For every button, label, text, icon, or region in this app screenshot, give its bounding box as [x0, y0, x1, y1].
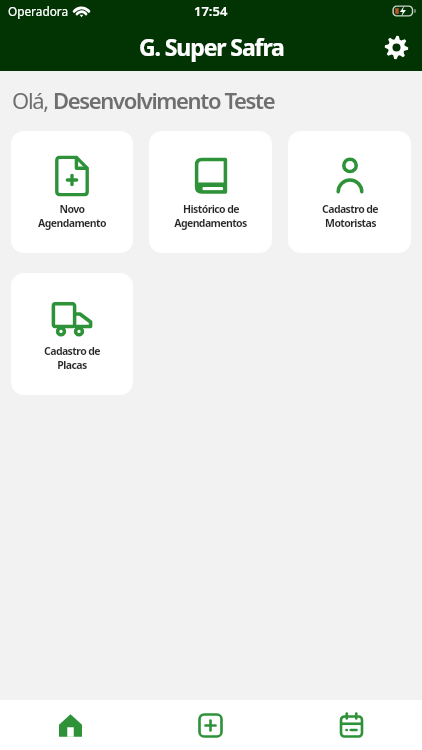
staticText: Operadora	[8, 3, 69, 19]
staticText: Cadastro de	[44, 344, 100, 358]
staticText: Agendamentos	[174, 216, 247, 230]
button[interactable]: Settings	[379, 30, 413, 64]
staticText: Desenvolvimento Teste	[53, 85, 275, 115]
button[interactable]: Cadastro de	[11, 273, 133, 395]
staticText: G. Super Safra	[139, 31, 284, 62]
staticText: Histórico de	[183, 202, 239, 216]
button[interactable]: New appointment	[140, 700, 281, 750]
button[interactable]: Histórico de	[149, 131, 272, 253]
staticText: Olá,	[12, 85, 53, 115]
button[interactable]: Novo	[11, 131, 133, 253]
staticText: Motoristas	[325, 216, 376, 230]
button[interactable]: Schedule	[281, 700, 422, 750]
staticText: Placas	[57, 358, 87, 372]
button[interactable]: Cadastro de	[288, 131, 411, 253]
staticText: Agendamento	[38, 216, 106, 230]
button[interactable]: Home	[0, 700, 140, 750]
staticText: Cadastro de	[322, 202, 378, 216]
staticText: 17:54	[194, 2, 228, 20]
staticText: Novo	[59, 202, 85, 216]
